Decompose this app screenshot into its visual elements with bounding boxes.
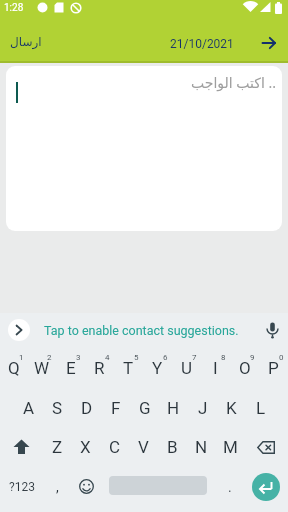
- button[interactable]: G: [130, 389, 159, 427]
- button[interactable]: O: [230, 347, 259, 389]
- staticText: .: [228, 479, 232, 495]
- button[interactable]: [262, 36, 276, 50]
- staticText: A: [23, 398, 35, 418]
- button[interactable]: L: [246, 389, 275, 427]
- staticText: R: [94, 358, 105, 378]
- button[interactable]: [8, 319, 30, 341]
- staticText: N: [195, 437, 208, 457]
- button[interactable]: K: [217, 389, 246, 427]
- button[interactable]: R: [85, 347, 114, 389]
- staticText: E: [66, 358, 76, 378]
- staticText: ارسال: [10, 35, 42, 49]
- button[interactable]: Z: [43, 427, 71, 467]
- button[interactable]: V: [129, 427, 158, 467]
- button[interactable]: [245, 427, 288, 467]
- staticText: Z: [52, 437, 63, 457]
- staticText: X: [80, 437, 91, 457]
- staticText: 3: [76, 353, 81, 362]
- button[interactable]: F: [101, 389, 130, 427]
- button[interactable]: J: [188, 389, 217, 427]
- button[interactable]: D: [72, 389, 101, 427]
- button[interactable]: .: [215, 467, 244, 506]
- button[interactable]: B: [158, 427, 187, 467]
- staticText: K: [226, 398, 237, 418]
- button[interactable]: C: [100, 427, 129, 467]
- staticText: 8: [221, 353, 226, 362]
- staticText: 2: [47, 353, 52, 362]
- staticText: Y: [152, 358, 163, 378]
- button[interactable]: 21/10/2021: [170, 37, 234, 51]
- staticText: F: [111, 398, 121, 418]
- button[interactable]: E: [56, 347, 85, 389]
- button[interactable]: ,: [43, 467, 72, 506]
- button[interactable]: X: [71, 427, 100, 467]
- staticText: 9: [250, 353, 255, 362]
- button[interactable]: T: [114, 347, 143, 389]
- staticText: W: [34, 358, 50, 378]
- button[interactable]: [72, 467, 101, 506]
- staticText: 1: [19, 353, 24, 362]
- button[interactable]: P: [259, 347, 288, 389]
- button[interactable]: U: [172, 347, 201, 389]
- staticText: Tap to enable contact suggestions.: [44, 323, 239, 338]
- button[interactable]: M: [216, 427, 245, 467]
- button[interactable]: [266, 322, 279, 339]
- button[interactable]: I: [201, 347, 230, 389]
- button[interactable]: [0, 427, 43, 467]
- staticText: اكتب الواجب ..: [191, 73, 276, 92]
- staticText: U: [181, 358, 193, 378]
- staticText: 4: [105, 353, 110, 362]
- button[interactable]: H: [159, 389, 188, 427]
- staticText: ,: [56, 479, 59, 495]
- staticText: V: [138, 437, 149, 457]
- staticText: H: [167, 398, 180, 418]
- staticText: J: [198, 398, 208, 418]
- staticText: 0: [279, 353, 284, 362]
- button[interactable]: اكتب الواجب ..: [6, 66, 282, 231]
- staticText: G: [139, 398, 151, 418]
- staticText: C: [109, 437, 121, 457]
- button[interactable]: S: [43, 389, 72, 427]
- button[interactable]: Y: [143, 347, 172, 389]
- staticText: M: [223, 437, 238, 457]
- staticText: S: [52, 398, 63, 418]
- staticText: D: [81, 398, 93, 418]
- button[interactable]: ?123: [0, 467, 43, 506]
- staticText: Q: [8, 358, 20, 378]
- button[interactable]: ارسال: [10, 35, 42, 49]
- staticText: ?123: [9, 480, 35, 494]
- button[interactable]: A: [15, 389, 43, 427]
- staticText: O: [239, 358, 251, 378]
- staticText: P: [268, 358, 279, 378]
- staticText: B: [167, 437, 178, 457]
- staticText: 21/10/2021: [170, 37, 234, 51]
- button[interactable]: [252, 473, 280, 501]
- staticText: 1:28: [4, 2, 24, 14]
- staticText: T: [123, 358, 134, 378]
- staticText: L: [256, 398, 266, 418]
- staticText: 6: [163, 353, 168, 362]
- button[interactable]: N: [187, 427, 216, 467]
- button[interactable]: Tap to enable contact suggestions.: [44, 323, 239, 338]
- button[interactable]: Q: [0, 347, 28, 389]
- staticText: 5: [134, 353, 139, 362]
- button[interactable]: W: [28, 347, 56, 389]
- staticText: I: [213, 358, 218, 378]
- staticText: 7: [192, 353, 197, 362]
